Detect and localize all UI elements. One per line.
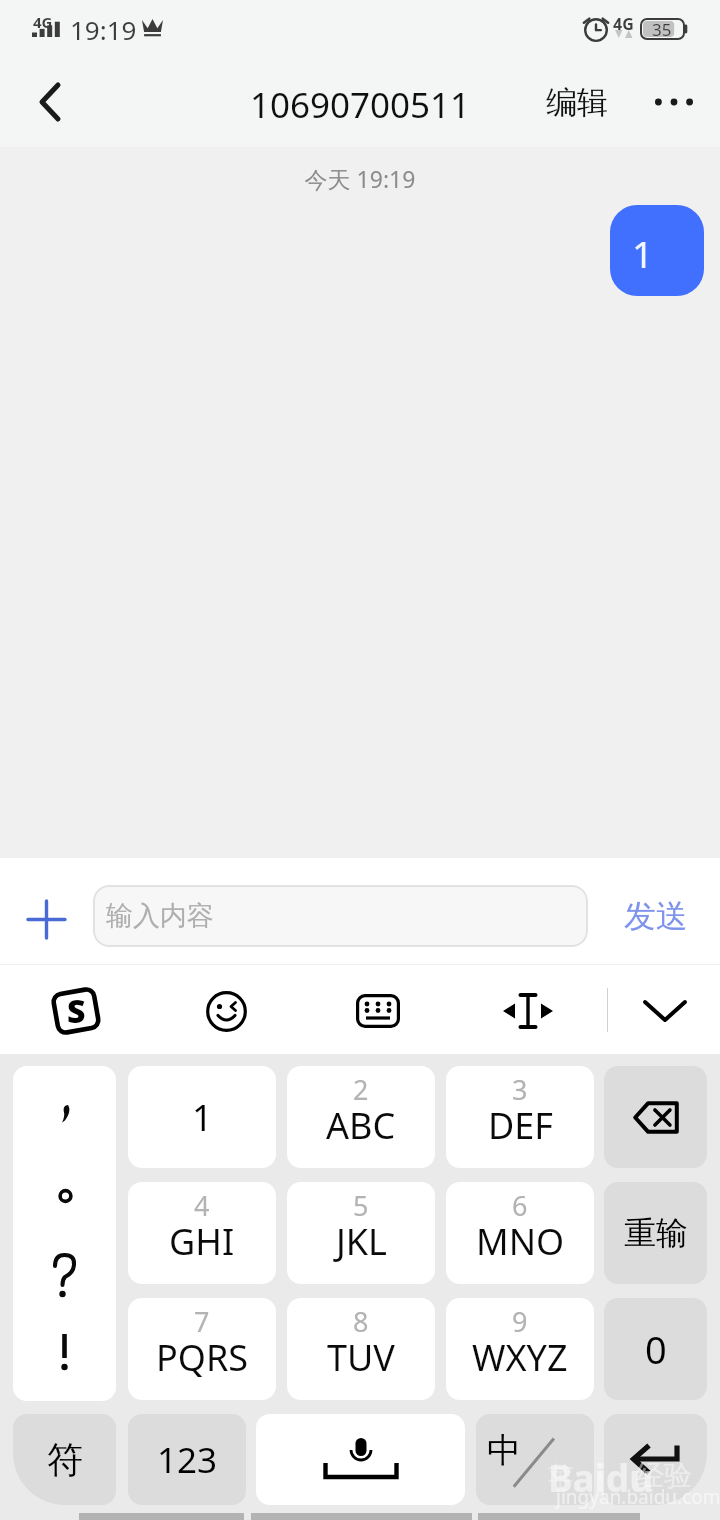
button[interactable]: Hide keyboard — [632, 978, 698, 1044]
staticText: 苹 — [548, 1460, 574, 1493]
button[interactable]: Emoji — [190, 978, 262, 1044]
staticText: 123 — [157, 1436, 218, 1484]
button[interactable]: 0 — [604, 1298, 707, 1400]
staticText: 发送 — [624, 896, 688, 936]
staticText: GHI — [169, 1217, 235, 1266]
staticText: 输入内容 — [106, 899, 214, 933]
button[interactable]: 6 — [446, 1182, 594, 1284]
button[interactable]: Enter — [604, 1414, 707, 1505]
staticText: 今天 19:19 — [0, 163, 720, 194]
staticText: DEF — [488, 1101, 553, 1150]
button[interactable]: 4 — [128, 1182, 276, 1284]
staticText: 0 — [645, 1323, 667, 1375]
staticText: MNO — [476, 1217, 565, 1266]
button[interactable]: Add attachment — [13, 886, 79, 952]
staticText: WXYZ — [472, 1333, 568, 1382]
button[interactable]: 5 — [287, 1182, 435, 1284]
button[interactable]: 7 — [128, 1298, 276, 1400]
staticText: 1 — [632, 228, 654, 278]
staticText: 经验 — [636, 1458, 692, 1493]
staticText: Baidu — [548, 1452, 654, 1502]
staticText: JKL — [336, 1217, 387, 1266]
button[interactable]: Back — [14, 71, 86, 133]
staticText: ABC — [326, 1101, 396, 1150]
staticText: 5 — [353, 1187, 369, 1224]
staticText: 7 — [194, 1303, 210, 1340]
button[interactable]: 123 — [128, 1414, 246, 1505]
staticText: 重输 — [624, 1213, 688, 1253]
button[interactable]: Sogou keyboard — [40, 978, 112, 1044]
staticText: 6 — [512, 1187, 528, 1224]
button[interactable]: 编辑 — [536, 72, 618, 132]
button[interactable]: 1 — [610, 205, 704, 296]
staticText: 中 — [487, 1429, 521, 1472]
staticText: S — [67, 989, 86, 1033]
button[interactable]: 符 — [13, 1414, 116, 1505]
button[interactable]: 1 — [128, 1066, 276, 1168]
staticText: jingyan.baidu.com — [556, 1484, 720, 1510]
button[interactable]: 8 — [287, 1298, 435, 1400]
staticText: 3 — [512, 1071, 528, 1108]
button[interactable]: 重输 — [604, 1182, 707, 1284]
staticText: 9 — [512, 1303, 528, 1340]
staticText: 8 — [353, 1303, 369, 1340]
button[interactable]: 9 — [446, 1298, 594, 1400]
button[interactable]: 输入内容 — [93, 885, 588, 947]
staticText: 2 — [353, 1071, 369, 1108]
staticText: 19:19 — [70, 12, 137, 47]
button[interactable]: 发送 — [600, 885, 712, 947]
staticText: TUV — [327, 1333, 395, 1382]
button[interactable]: Backspace — [604, 1066, 707, 1168]
button[interactable]: Voice input / space — [256, 1414, 465, 1505]
staticText: 4 — [194, 1187, 210, 1224]
staticText: 4G — [613, 13, 634, 35]
staticText: 10690700511 — [0, 81, 720, 129]
staticText: 4G — [33, 12, 53, 32]
staticText: 1 — [192, 1093, 213, 1142]
button[interactable]: 2 — [287, 1066, 435, 1168]
staticText: 35 — [652, 18, 672, 40]
button[interactable]: Keyboard layout — [342, 978, 414, 1044]
staticText: PQRS — [156, 1333, 249, 1382]
button[interactable]: Move cursor — [492, 978, 564, 1044]
button[interactable]: Switch Chinese English — [476, 1414, 594, 1505]
button[interactable]: 3 — [446, 1066, 594, 1168]
button[interactable]: Punctuation — [13, 1066, 116, 1401]
staticText: 符 — [47, 1437, 83, 1482]
staticText: 编辑 — [546, 83, 608, 122]
button[interactable]: More options — [640, 72, 708, 132]
